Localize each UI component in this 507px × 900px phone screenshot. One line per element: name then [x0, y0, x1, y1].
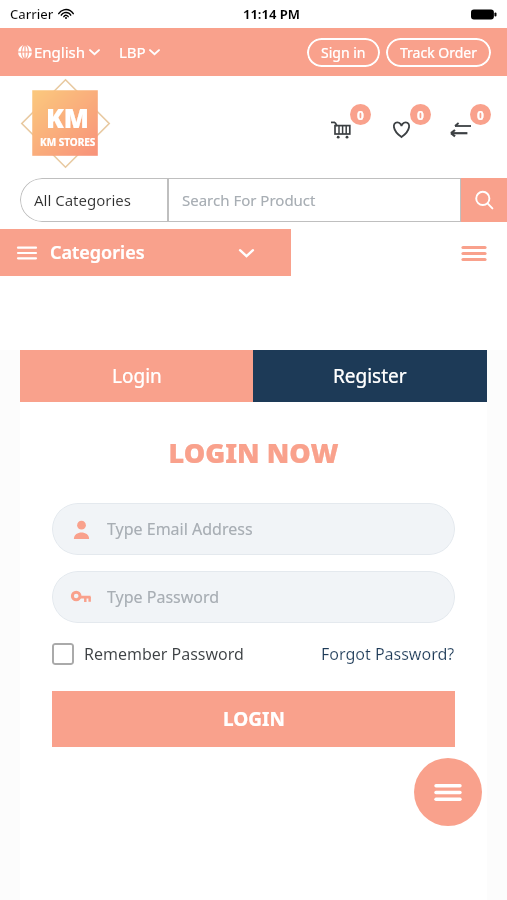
- staticText: English: [34, 42, 86, 62]
- staticText: Sign in: [321, 43, 366, 62]
- button[interactable]: Cart: [331, 104, 371, 144]
- staticText: LOGIN: [223, 706, 285, 732]
- staticText: Categories: [50, 240, 145, 265]
- button[interactable]: Menu: [457, 236, 491, 270]
- button[interactable]: Search: [461, 178, 507, 222]
- staticText: Type Email Address: [107, 518, 253, 540]
- button[interactable]: English: [16, 38, 101, 66]
- button[interactable]: Forgot Password?: [321, 639, 455, 669]
- button[interactable]: Login: [20, 350, 253, 402]
- staticText: Login: [112, 363, 162, 389]
- staticText: KM: [46, 100, 90, 135]
- staticText: Carrier: [10, 5, 54, 23]
- button[interactable]: Type Email Address: [52, 503, 455, 555]
- button[interactable]: All Categories: [20, 178, 168, 222]
- button[interactable]: Remember Password: [52, 639, 244, 669]
- button[interactable]: LBP: [117, 38, 161, 66]
- button[interactable]: Categories: [0, 229, 291, 276]
- staticText: Register: [333, 363, 407, 389]
- staticText: 11:14 PM: [243, 5, 301, 23]
- button[interactable]: LOGIN: [52, 691, 455, 747]
- button[interactable]: Wishlist: [391, 104, 431, 144]
- staticText: 0: [357, 107, 364, 123]
- button[interactable]: Search For Product: [168, 178, 461, 222]
- staticText: 0: [477, 107, 484, 123]
- button[interactable]: Compare: [451, 104, 491, 144]
- staticText: Track Order: [400, 43, 477, 62]
- staticText: Forgot Password?: [321, 643, 455, 665]
- staticText: All Categories: [34, 190, 132, 210]
- staticText: Search For Product: [182, 190, 316, 210]
- button[interactable]: Track Order: [386, 38, 491, 67]
- staticText: Remember Password: [84, 643, 244, 665]
- button[interactable]: Register: [253, 350, 487, 402]
- staticText: LOGIN NOW: [52, 434, 455, 471]
- button[interactable]: Sign in: [307, 38, 380, 67]
- staticText: Type Password: [107, 586, 220, 608]
- staticText: KM STORES: [40, 135, 96, 149]
- button[interactable]: KM Stores logo: [18, 76, 118, 171]
- button[interactable]: Type Password: [52, 571, 455, 623]
- staticText: 0: [417, 107, 424, 123]
- staticText: LBP: [119, 42, 146, 62]
- button[interactable]: Menu: [414, 758, 482, 826]
